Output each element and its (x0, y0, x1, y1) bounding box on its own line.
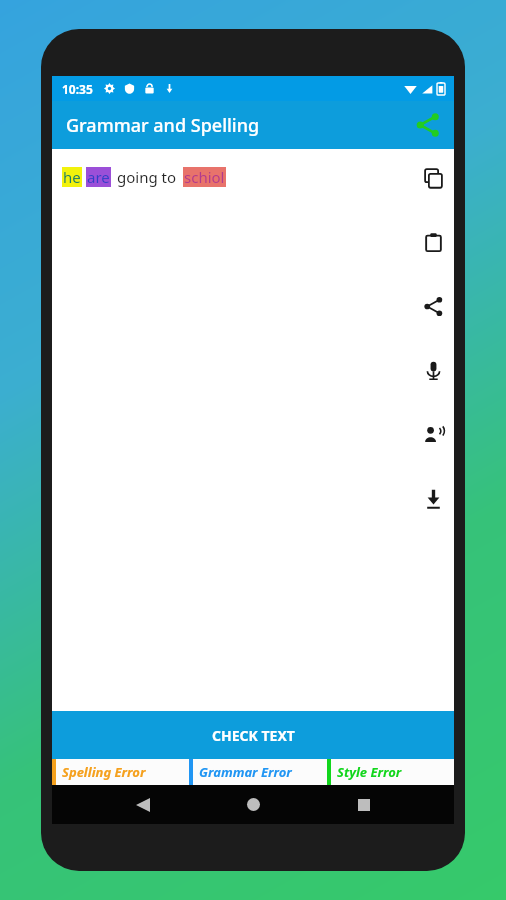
staticText: Grammar Error (199, 763, 292, 781)
staticText: are (87, 167, 110, 187)
staticText: Spelling Error (62, 763, 146, 781)
button[interactable]: Style Error (327, 759, 454, 785)
staticText: CHECK TEXT (212, 726, 295, 745)
button[interactable]: Recents (344, 785, 384, 824)
button[interactable]: Copy (418, 163, 448, 193)
button[interactable]: Share (418, 291, 448, 321)
button[interactable]: Grammar Error (189, 759, 327, 785)
staticText: he (63, 167, 81, 187)
staticText: Style Error (337, 763, 402, 781)
staticText: schiol (184, 167, 225, 187)
button[interactable]: CHECK TEXT (52, 711, 454, 759)
button[interactable]: Paste (418, 227, 448, 257)
button[interactable]: Share (408, 105, 448, 145)
button[interactable]: Home (233, 785, 273, 824)
button[interactable]: Download (418, 483, 448, 513)
button[interactable]: Read aloud (418, 419, 448, 449)
staticText: 10:35 (62, 81, 93, 97)
button[interactable]: Back (123, 785, 163, 824)
button[interactable]: Spelling Error (52, 759, 189, 785)
staticText: going to (117, 167, 177, 187)
staticText: Grammar and Spelling (66, 113, 260, 138)
button[interactable]: Voice input (418, 355, 448, 385)
